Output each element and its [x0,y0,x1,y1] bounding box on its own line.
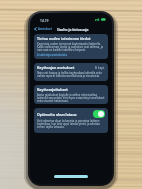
button[interactable]: Optimoitu akun lataus [34,108,108,133]
staticText: Lisatietoja asetuksista [37,53,67,57]
staticText: Aseta rajoitukset kaytolle ja valitse mi… [37,93,105,102]
staticText: Asetukset [38,27,52,31]
staticText: Optimoitu akun lataus [37,112,77,117]
staticText: Kaynnista uuden toiminnot kaytettavaksi … [37,42,105,52]
staticText: Kayttorajoitukset [37,87,68,92]
staticText: 14.19 [40,18,49,22]
staticText: Voit vahentaa akun kulumista ja parantaa… [37,119,105,129]
staticText: Sisalto ja tietosuoja [57,27,89,31]
button[interactable]: Kayttoajan asetukset [34,63,108,81]
staticText: Nain voit katsoa ja hallita kayttoaikaa … [37,71,105,78]
button[interactable]: Kayttorajoitukset [34,85,108,104]
button[interactable]: Back [30,26,54,32]
staticText: Tietoa uuden toiminnon tiedot [37,36,91,41]
button[interactable]: Tietoa uuden toiminnon tiedot [34,34,108,59]
button[interactable]: Toggle optimized charging [93,110,105,118]
staticText: Kayttoajan asetukset [37,65,75,70]
staticText: Ei kayt. [95,66,105,70]
